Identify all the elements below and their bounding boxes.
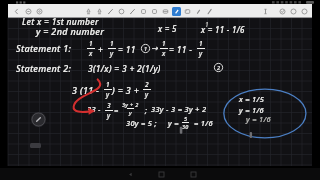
staticText: + (98, 44, 104, 56)
staticText: 1 (89, 39, 93, 48)
button[interactable]: Tool 11 (194, 7, 203, 16)
button[interactable]: Text (261, 7, 270, 16)
button[interactable]: Tool 10 (183, 7, 192, 16)
staticText: 30 (182, 123, 189, 130)
staticText: Statement 1: (16, 42, 72, 54)
staticText: 33 - (87, 104, 104, 114)
staticText: x = 1/5 (239, 94, 265, 104)
staticText: y = 2nd number (36, 25, 105, 37)
staticText: 3y + 2 (122, 101, 139, 108)
staticText: y (110, 49, 114, 58)
staticText: y = 1/6 (239, 105, 264, 115)
staticText: x = 11 - 1/6 (201, 24, 245, 35)
staticText: y (107, 111, 111, 120)
button[interactable]: Tool 5 (128, 7, 137, 16)
button[interactable]: Tool 1 (84, 7, 93, 16)
staticText: 1 (144, 45, 148, 52)
button[interactable]: More options (300, 7, 309, 16)
staticText: = 11 - (169, 44, 193, 56)
staticText: 1 (199, 39, 203, 48)
staticText: y (106, 90, 110, 99)
button[interactable]: Tool 12 (205, 7, 214, 16)
staticText: 1 (205, 20, 209, 29)
staticText: = 11 (118, 44, 136, 56)
staticText: ; (145, 105, 148, 115)
button[interactable]: Tool 8 (161, 7, 170, 16)
staticText: x (89, 49, 93, 58)
button[interactable]: Search (289, 7, 298, 16)
staticText: 5 (184, 115, 188, 122)
staticText: 1 (162, 39, 166, 48)
staticText: y (145, 90, 149, 99)
staticText: y (199, 49, 203, 58)
button[interactable]: Redo (35, 7, 44, 16)
button[interactable]: Tool 3 (106, 7, 115, 16)
staticText: = 1/6 (194, 118, 213, 128)
staticText: 33y - 3 = 3y + 2 (151, 104, 207, 114)
button[interactable]: Tool 4 (117, 7, 126, 16)
button[interactable]: Recent apps (187, 168, 199, 180)
button[interactable]: Share (278, 7, 287, 16)
staticText: ) = 3 + (112, 84, 140, 96)
staticText: 1 (110, 39, 114, 48)
staticText: 1 (106, 80, 110, 89)
button[interactable]: Undo (24, 7, 33, 16)
staticText: y = (168, 118, 179, 128)
staticText: 2 (217, 64, 221, 71)
button[interactable]: Tool 9 (172, 7, 181, 16)
staticText: Statement 2: (16, 62, 72, 74)
button[interactable]: Back (124, 168, 136, 180)
staticText: x (162, 49, 166, 58)
staticText: Let x = 1st number (22, 16, 99, 28)
staticText: 2 (145, 80, 149, 89)
staticText: = (114, 105, 119, 115)
button[interactable]: Home (155, 168, 167, 180)
button[interactable]: Back (12, 7, 21, 16)
staticText: → (151, 44, 159, 53)
staticText: 3 (11 - (72, 84, 102, 96)
staticText: y = 1/6 (246, 114, 271, 124)
staticText: x = 5 (158, 23, 177, 34)
staticText: y (129, 109, 132, 116)
button[interactable]: Tool 7 (150, 7, 159, 16)
button[interactable]: Color swatch (30, 143, 41, 148)
button[interactable]: Pen settings (31, 112, 46, 127)
staticText: 3 (107, 101, 111, 110)
button[interactable]: Tool 6 (139, 7, 148, 16)
button[interactable]: Tool 2 (95, 7, 104, 16)
staticText: 3(1/x) = 3 + 2(1/y) (88, 63, 161, 75)
staticText: 30y = 5 ; (126, 118, 157, 128)
